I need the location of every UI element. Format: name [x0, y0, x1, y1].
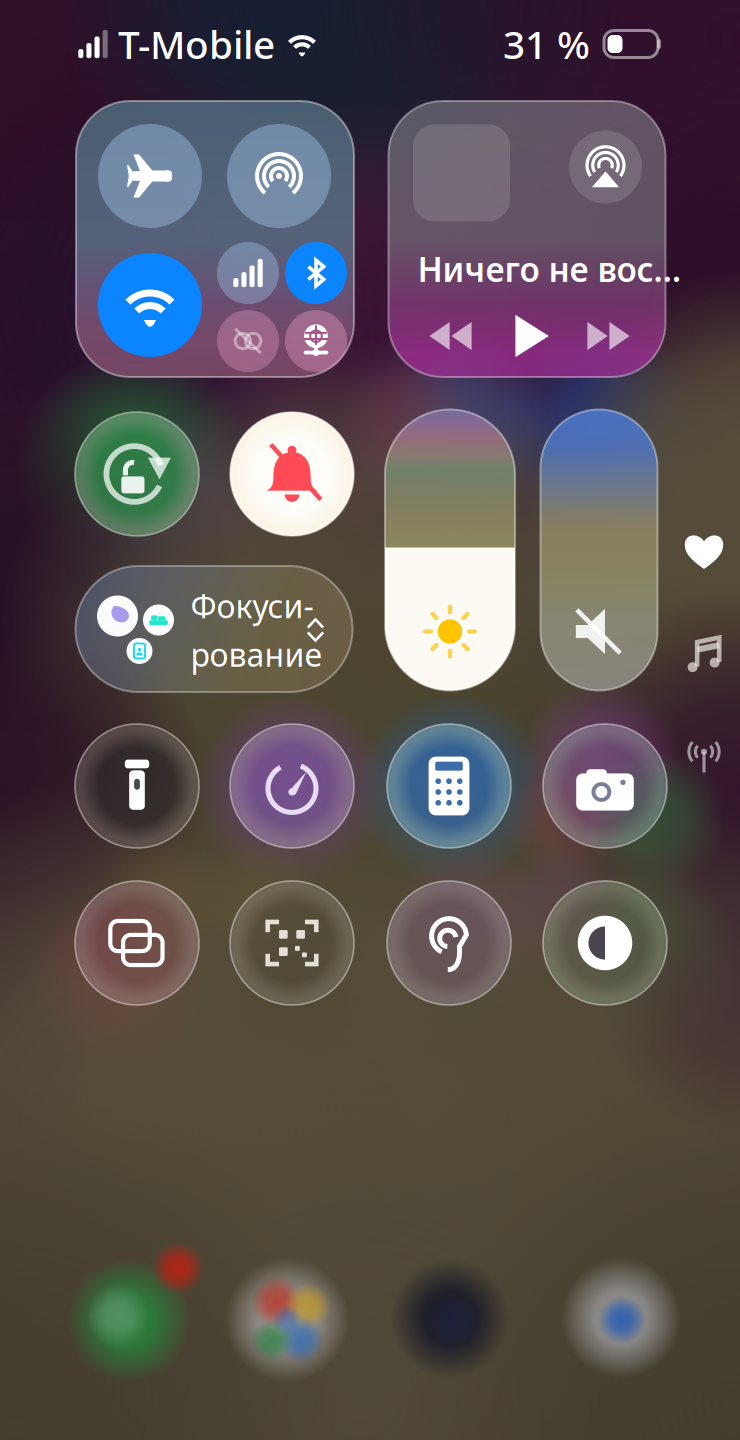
button[interactable]: Cellular Data: [217, 242, 279, 304]
button[interactable]: Airplane Mode: [98, 124, 202, 228]
staticText: T-Mobile: [118, 18, 275, 70]
button[interactable]: Dark Mode: [543, 881, 667, 1005]
button[interactable]: Screen Mirroring: [75, 881, 199, 1005]
button[interactable]: Previous Track: [417, 303, 483, 369]
button[interactable]: Rotation Lock: [75, 412, 199, 536]
button[interactable]: Calculator: [387, 724, 511, 848]
button[interactable]: AirPlay: [569, 130, 642, 203]
button[interactable]: Connectivity: [676, 728, 732, 784]
button[interactable]: Now Playing: [676, 627, 732, 683]
button[interactable]: Silent Mode: [230, 412, 354, 536]
button[interactable]: Camera: [543, 724, 667, 848]
staticText: рование: [190, 633, 322, 675]
button[interactable]: Wi-Fi: [98, 253, 202, 357]
button[interactable]: Hearing: [387, 881, 511, 1005]
button[interactable]: Home Controls: [676, 523, 732, 579]
button[interactable]: Flashlight: [75, 724, 199, 848]
button[interactable]: Next Track: [575, 303, 641, 369]
button[interactable]: Bluetooth: [285, 242, 347, 304]
button[interactable]: Code Scanner: [230, 881, 354, 1005]
staticText: Ничего не воспр: [417, 247, 685, 291]
button[interactable]: Personal Hotspot: [217, 310, 279, 372]
button[interactable]: Timer: [230, 724, 354, 848]
button[interactable]: Internet Sharing: [285, 310, 347, 372]
staticText: 31 %: [503, 18, 590, 70]
button[interactable]: AirDrop: [227, 124, 331, 228]
staticText: Фокуси-: [190, 584, 313, 627]
button[interactable]: Play: [496, 303, 562, 369]
